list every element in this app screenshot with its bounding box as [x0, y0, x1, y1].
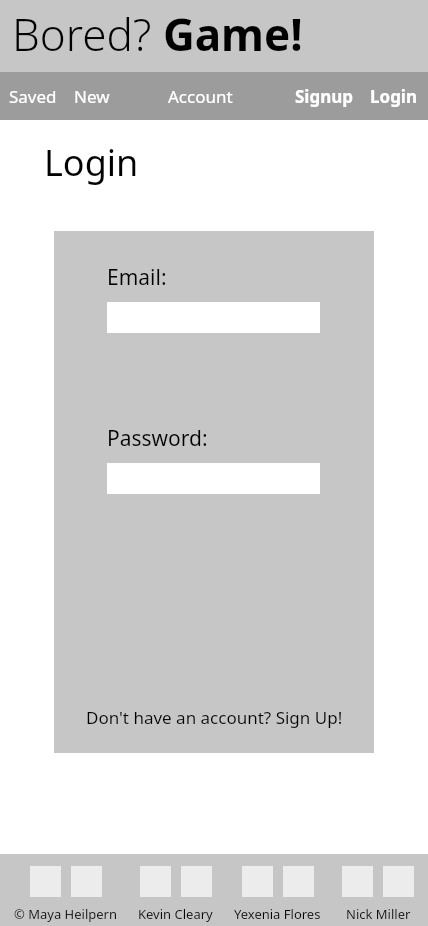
staticText: Yexenia Flores: [234, 905, 321, 923]
button[interactable]: Login: [370, 81, 418, 112]
staticText: Saved: [9, 85, 57, 108]
button[interactable]: Account: [168, 81, 233, 112]
staticText: Bored? Game!: [12, 4, 303, 64]
staticText: Account: [168, 85, 233, 108]
staticText: Don't have an account? Sign Up!: [86, 706, 343, 729]
button[interactable]: Maya Heilpern: [14, 866, 117, 923]
button[interactable]: Signup: [295, 81, 354, 112]
staticText: Nick Miller: [346, 905, 411, 923]
button[interactable]: New: [74, 81, 110, 112]
staticText: © Maya Heilpern: [14, 905, 117, 923]
staticText: Signup: [295, 85, 354, 108]
button[interactable]: Yexenia Flores: [234, 866, 321, 923]
button[interactable]: Don't have an account? Sign Up!: [82, 702, 347, 733]
staticText: New: [74, 85, 110, 108]
button[interactable]: Saved: [9, 81, 57, 112]
staticText: Login: [44, 138, 139, 187]
button[interactable]: Nick Miller: [342, 866, 414, 923]
staticText: Kevin Cleary: [138, 905, 213, 923]
staticText: Email:: [107, 263, 167, 292]
staticText: Login: [370, 85, 418, 108]
staticText: Password:: [107, 424, 208, 453]
button[interactable]: Kevin Cleary: [138, 866, 213, 923]
